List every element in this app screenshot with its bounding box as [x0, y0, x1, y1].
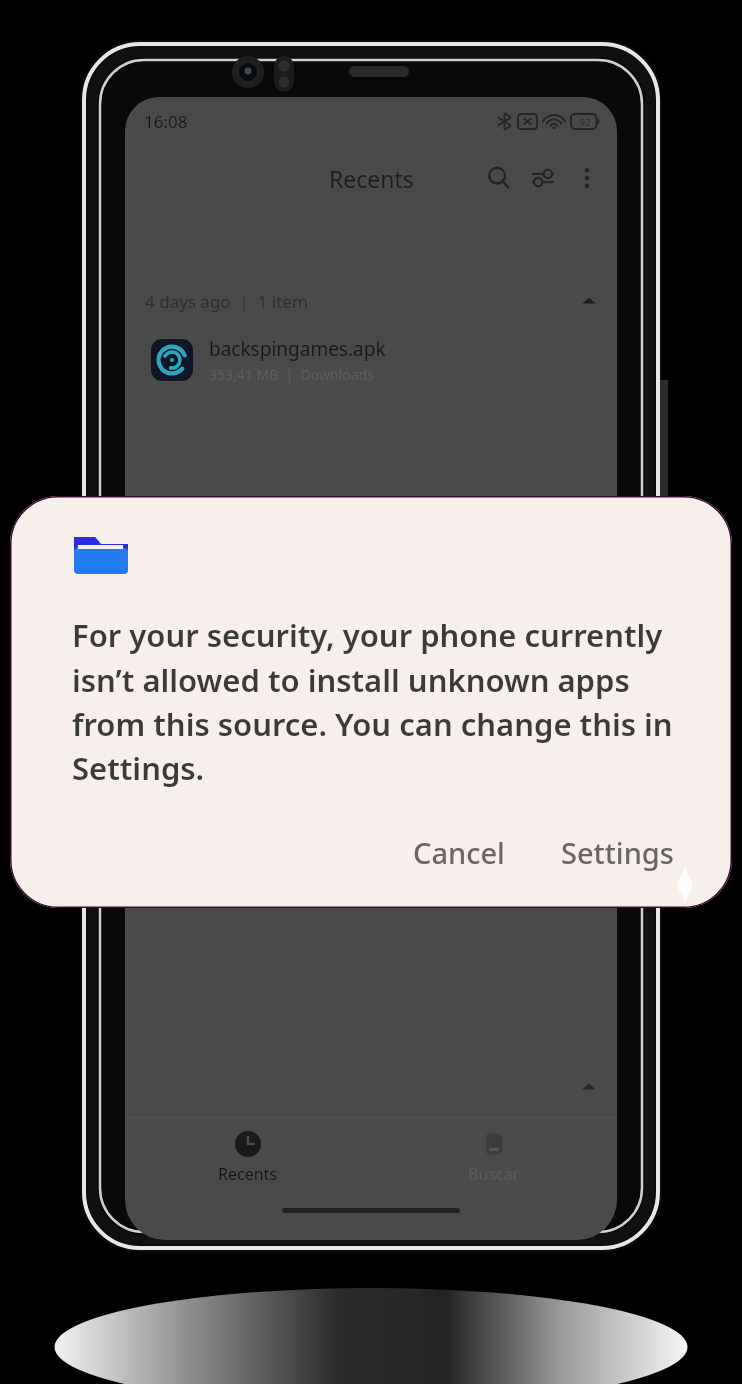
staticText: 4 days ago | 1 item [145, 290, 308, 313]
staticText: Buscar [468, 1163, 520, 1185]
staticText: 92 [580, 116, 591, 128]
staticText: Settings [561, 833, 674, 872]
button[interactable]: Cancel [399, 825, 519, 880]
button[interactable]: Settings [547, 825, 688, 880]
button[interactable]: backspingames.apk [125, 323, 617, 397]
staticText: 353,41 MB | Downloads [209, 365, 374, 384]
button[interactable]: Recents [125, 1118, 371, 1208]
button[interactable]: More options [565, 156, 609, 200]
staticText: backspingames.apk [209, 336, 386, 362]
button[interactable]: Search [477, 156, 521, 200]
staticText: For your security, your phone currently … [72, 614, 688, 789]
button[interactable]: 4 days ago | 1 item [125, 279, 617, 323]
staticText: 16:08 [144, 110, 188, 133]
button[interactable]: Filter [521, 156, 565, 200]
staticText: Recents [329, 163, 414, 194]
staticText: Cancel [413, 833, 505, 872]
staticText: Recents [218, 1163, 278, 1185]
